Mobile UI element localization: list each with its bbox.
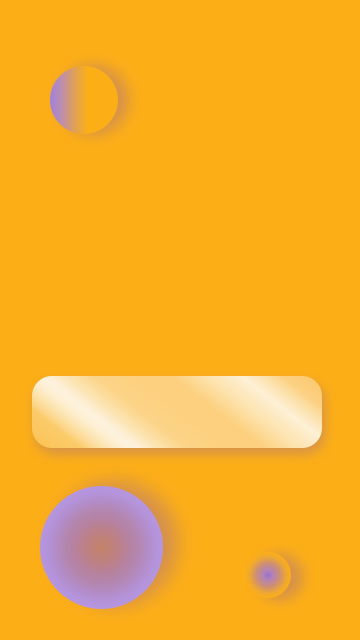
button[interactable] bbox=[32, 376, 322, 448]
